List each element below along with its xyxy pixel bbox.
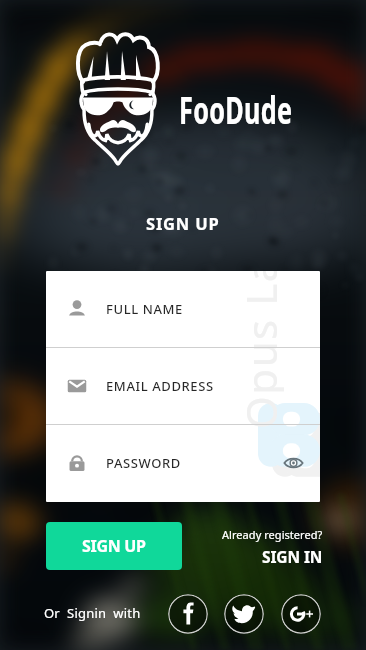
staticText: SIGN UP — [146, 212, 220, 234]
staticText: PASSWORD — [106, 454, 181, 472]
staticText: EMAIL ADDRESS — [106, 377, 214, 395]
staticText: SIGN IN — [262, 546, 323, 567]
staticText: FooDude — [179, 83, 293, 135]
staticText: Already registered? — [222, 527, 323, 542]
button[interactable]: Facebook — [168, 594, 208, 634]
button[interactable]: FULL NAME — [46, 271, 320, 347]
button[interactable]: Google Plus — [281, 594, 321, 634]
staticText: Opus La — [232, 271, 284, 429]
staticText: FULL NAME — [106, 300, 183, 318]
button[interactable]: Show password — [276, 446, 310, 480]
button[interactable]: EMAIL ADDRESS — [46, 348, 320, 424]
button[interactable]: PASSWORD — [46, 425, 320, 501]
button[interactable]: SIGN UP — [46, 522, 182, 570]
button[interactable]: Twitter — [224, 594, 264, 634]
button[interactable]: Already registered? — [193, 527, 323, 567]
staticText: SIGN UP — [82, 535, 146, 557]
staticText: Or Signin with — [44, 604, 141, 622]
